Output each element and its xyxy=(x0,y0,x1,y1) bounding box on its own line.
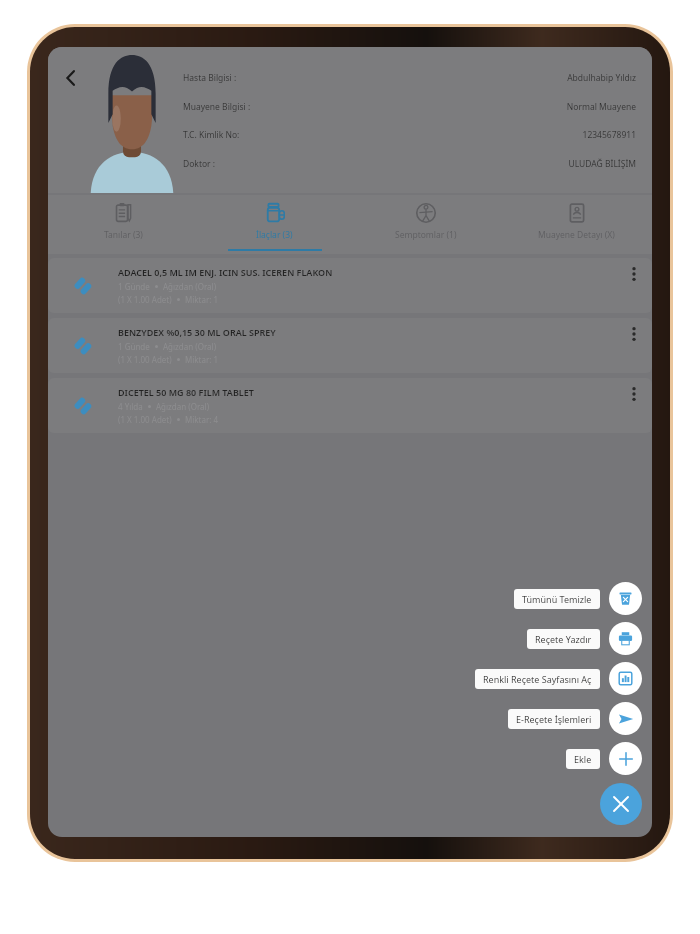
button[interactable]: Reçete Yazdır xyxy=(609,622,642,655)
button[interactable]: Semptomlar (1) xyxy=(350,195,501,254)
button[interactable]: Ekle xyxy=(566,749,600,769)
staticText: 1 Günde xyxy=(118,341,150,352)
staticText: Ekle xyxy=(574,753,592,765)
staticText: Ağızdan (Oral) xyxy=(163,281,217,292)
staticText: Muayene Bilgisi : xyxy=(183,101,251,113)
staticText: Renkli Reçete Sayfasını Aç xyxy=(483,673,592,685)
staticText: Abdulhabip Yıldız xyxy=(567,72,636,84)
staticText: Miktar: 1 xyxy=(185,294,219,305)
button[interactable]: Renkli Reçete Sayfasını Aç xyxy=(609,662,642,695)
button[interactable]: E-Reçete İşlemleri xyxy=(609,702,642,735)
button[interactable]: Tümünü Temizle xyxy=(609,582,642,615)
button[interactable]: Close menu xyxy=(600,783,642,825)
staticText: Miktar: 1 xyxy=(185,354,219,365)
staticText: 12345678911 xyxy=(582,129,636,141)
button[interactable]: İlaçlar (3) xyxy=(199,195,350,254)
staticText: DICETEL 50 MG 80 FILM TABLET xyxy=(118,386,254,398)
button[interactable]: More options xyxy=(616,318,652,373)
button[interactable]: E-Reçete İşlemleri xyxy=(508,709,600,729)
button[interactable]: DICETEL 50 MG 80 FILM TABLET xyxy=(48,378,652,433)
button[interactable]: Renkli Reçete Sayfasını Aç xyxy=(475,669,600,689)
staticText: (1 X 1.00 Adet) xyxy=(118,294,172,305)
staticText: Tanılar (3) xyxy=(104,229,143,241)
button[interactable]: BENZYDEX %0,15 30 ML ORAL SPREY xyxy=(48,318,652,373)
staticText: (1 X 1.00 Adet) xyxy=(118,354,172,365)
button[interactable]: Reçete Yazdır xyxy=(527,629,600,649)
staticText: 4 Yılda xyxy=(118,401,143,412)
button[interactable]: More options xyxy=(616,378,652,433)
staticText: Semptomlar (1) xyxy=(395,229,457,241)
staticText: Normal Muayene xyxy=(566,101,636,113)
staticText: T.C. Kimlik No: xyxy=(183,129,240,141)
button[interactable]: Ekle xyxy=(609,742,642,775)
button[interactable]: ADACEL 0,5 ML IM ENJ. ICIN SUS. ICEREN F… xyxy=(48,258,652,313)
staticText: 1 Günde xyxy=(118,281,150,292)
staticText: Tümünü Temizle xyxy=(522,593,592,605)
staticText: ULUDAĞ BİLİŞİM xyxy=(568,158,636,170)
staticText: ADACEL 0,5 ML IM ENJ. ICIN SUS. ICEREN F… xyxy=(118,266,333,278)
button[interactable]: Muayene Detayı (X) xyxy=(501,195,652,254)
button[interactable]: Tanılar (3) xyxy=(48,195,199,254)
staticText: (1 X 1.00 Adet) xyxy=(118,414,172,425)
staticText: BENZYDEX %0,15 30 ML ORAL SPREY xyxy=(118,326,276,338)
staticText: E-Reçete İşlemleri xyxy=(516,713,592,725)
staticText: İlaçlar (3) xyxy=(256,229,293,241)
staticText: Ağızdan (Oral) xyxy=(156,401,210,412)
staticText: Reçete Yazdır xyxy=(535,633,592,645)
button[interactable]: Tümünü Temizle xyxy=(514,589,600,609)
staticText: Doktor : xyxy=(183,158,216,170)
staticText: Miktar: 4 xyxy=(185,414,219,425)
button[interactable]: Back xyxy=(54,61,88,95)
staticText: Muayene Detayı (X) xyxy=(538,229,615,241)
staticText: Hasta Bilgisi : xyxy=(183,72,237,84)
button[interactable]: More options xyxy=(616,258,652,313)
staticText: Ağızdan (Oral) xyxy=(163,341,217,352)
